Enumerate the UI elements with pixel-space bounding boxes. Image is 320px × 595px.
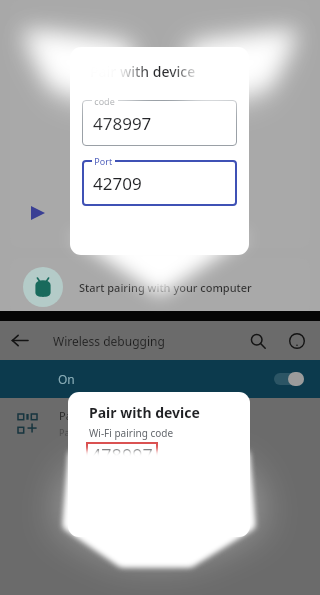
staticText: 478997 xyxy=(91,443,153,468)
staticText: 478997 xyxy=(93,112,152,135)
staticText: On xyxy=(58,371,75,387)
staticText: Pair new devices using QR code scanner xyxy=(59,426,229,438)
staticText: Wi-Fi pairing code xyxy=(89,426,174,440)
button[interactable]: On xyxy=(0,360,320,398)
staticText: 42709 xyxy=(93,172,142,195)
staticText: Start pairing with your computer xyxy=(79,280,252,295)
button[interactable]: Back xyxy=(0,321,39,360)
staticText: Pair with device xyxy=(90,62,196,81)
staticText: Pair with device xyxy=(89,403,200,422)
button[interactable]: Pair device with QR code xyxy=(0,398,320,448)
staticText: Port xyxy=(92,155,115,166)
button[interactable]: Search xyxy=(238,321,277,360)
staticText: Pair device with QR code xyxy=(59,408,186,423)
staticText: code xyxy=(92,95,118,106)
staticText: Wireless debugging xyxy=(53,333,165,349)
button[interactable]: Help xyxy=(277,321,316,360)
